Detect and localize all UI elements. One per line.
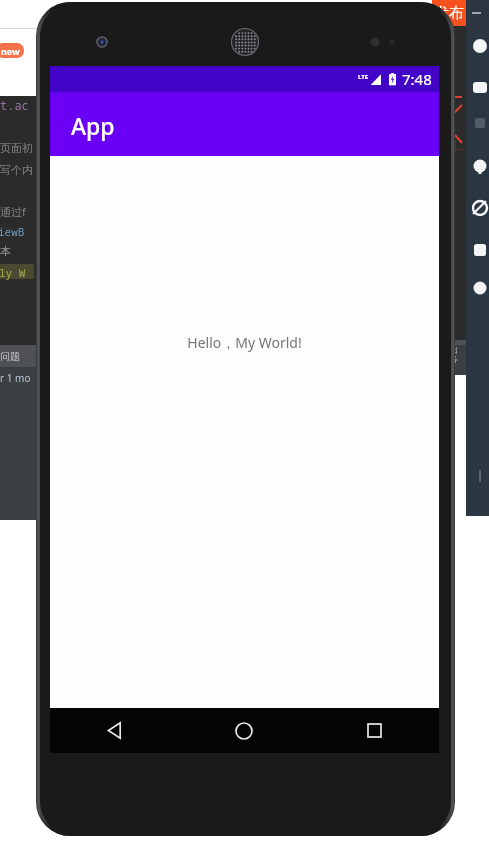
button[interactable]: Home bbox=[179, 708, 309, 753]
staticText: 写个内 bbox=[0, 163, 33, 177]
staticText: 出 各 bbox=[450, 345, 458, 364]
button[interactable]: new bbox=[0, 43, 24, 58]
staticText: 页面初 bbox=[0, 141, 33, 155]
staticText: App bbox=[71, 110, 115, 141]
button[interactable]: 发布 bbox=[432, 0, 466, 26]
button[interactable]: Recent apps bbox=[309, 708, 439, 753]
staticText: 通过f bbox=[0, 204, 26, 219]
staticText: 本 bbox=[0, 244, 11, 258]
button[interactable]: App bbox=[50, 92, 439, 156]
staticText: LTE bbox=[358, 73, 369, 81]
staticText: Hello，My World! bbox=[187, 333, 302, 352]
staticText: r 1 mo bbox=[0, 371, 31, 385]
staticText: 问题 bbox=[0, 350, 20, 363]
button[interactable]: Back bbox=[50, 708, 179, 753]
staticText: iewB bbox=[0, 224, 25, 239]
staticText: t.ac bbox=[0, 97, 29, 113]
staticText: ly W bbox=[0, 265, 26, 280]
staticText: 7:48 bbox=[402, 69, 432, 89]
staticText: 发布 bbox=[434, 4, 464, 23]
staticText: new bbox=[1, 45, 20, 57]
